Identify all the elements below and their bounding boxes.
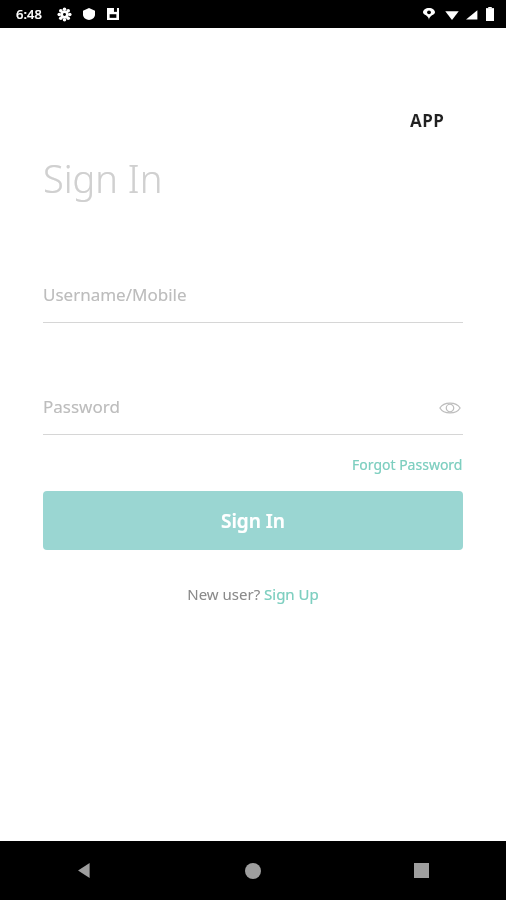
staticText: Forgot Password: [352, 455, 463, 474]
button[interactable]: Password: [43, 395, 463, 435]
staticText: Sign In: [43, 152, 163, 204]
button[interactable]: Username/Mobile: [43, 283, 463, 323]
button[interactable]: Forgot Password: [352, 455, 463, 474]
button[interactable]: Recents: [337, 841, 506, 900]
staticText: Password: [43, 395, 120, 418]
staticText: 6:48: [16, 5, 42, 23]
button[interactable]: Home: [168, 841, 337, 900]
button[interactable]: APP: [410, 109, 445, 132]
staticText: Sign In: [221, 508, 285, 534]
button[interactable]: Sign In: [43, 491, 463, 550]
staticText: APP: [410, 109, 445, 132]
button[interactable]: Back: [0, 841, 168, 900]
staticText: New user? Sign Up: [187, 584, 319, 604]
button[interactable]: Show password: [437, 395, 463, 421]
staticText: Username/Mobile: [43, 283, 187, 306]
button[interactable]: New user? Sign Up: [187, 584, 319, 604]
